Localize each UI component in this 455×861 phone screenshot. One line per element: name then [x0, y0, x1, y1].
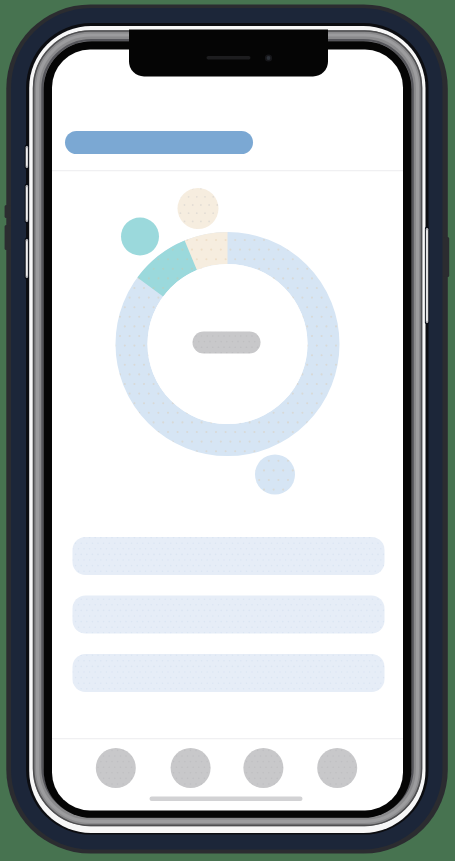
button[interactable]: Search — [153, 739, 227, 797]
button[interactable]: Statistics chart — [116, 232, 340, 456]
button[interactable]: Title — [65, 131, 253, 154]
button[interactable]: Notifications — [227, 739, 300, 797]
button[interactable]: Home — [52, 739, 153, 797]
button[interactable]: List item 1 — [73, 537, 385, 575]
button[interactable]: List item 2 — [73, 596, 385, 634]
button[interactable]: Profile — [300, 739, 403, 797]
button[interactable]: List item 3 — [73, 655, 385, 693]
